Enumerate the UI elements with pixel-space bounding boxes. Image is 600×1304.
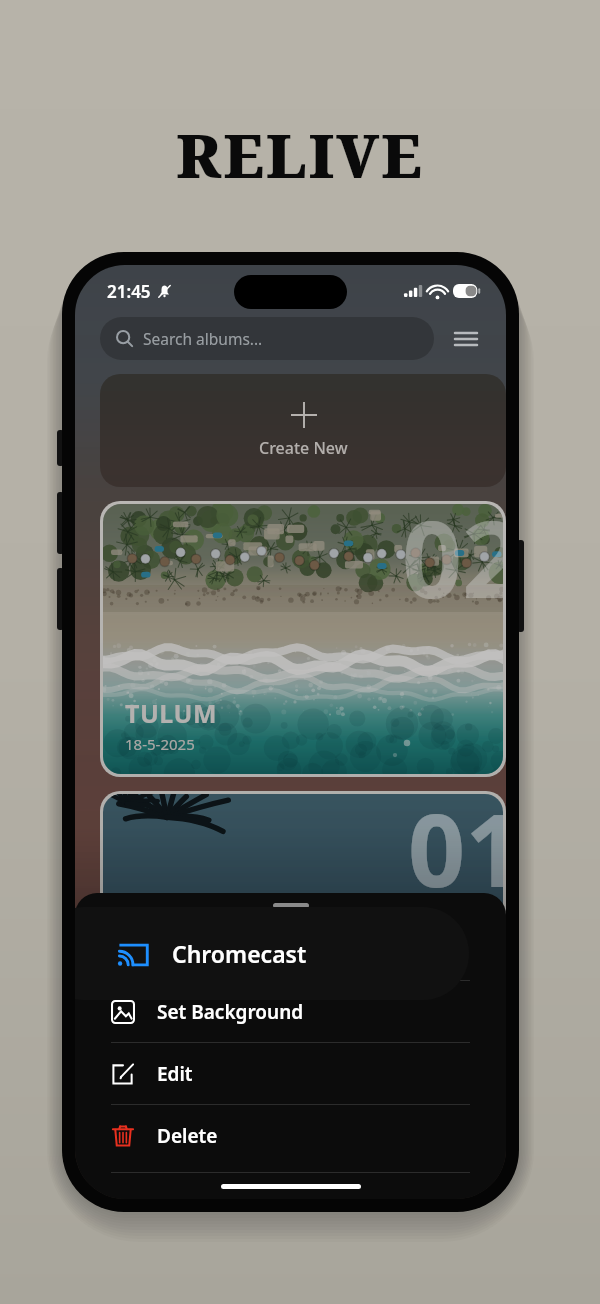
staticText: RELIVE [176,114,424,196]
button[interactable]: Delete [75,1105,506,1166]
button[interactable]: 01 [103,794,503,988]
staticText: 02 [402,504,503,629]
button[interactable]: Set Background [75,981,506,1042]
button[interactable]: Chromecast [75,907,469,1000]
staticText: 01 [408,794,503,916]
staticText: Edit [157,1061,193,1087]
staticText: Set Background [157,999,304,1025]
staticText: 18-5-2025 [125,734,195,754]
staticText: Delete [157,1123,218,1149]
staticText: Search albums... [143,328,263,349]
button[interactable]: Menu [446,319,486,359]
staticText: Create New [259,437,348,459]
staticText: 21:45 [107,280,151,303]
button[interactable]: 02 [103,504,503,774]
staticText: Chromecast [172,938,307,969]
button[interactable]: Create New [100,374,506,487]
button[interactable]: Edit [75,1043,506,1104]
staticText: TULUM [125,696,218,730]
button[interactable]: Search albums... [100,317,434,360]
